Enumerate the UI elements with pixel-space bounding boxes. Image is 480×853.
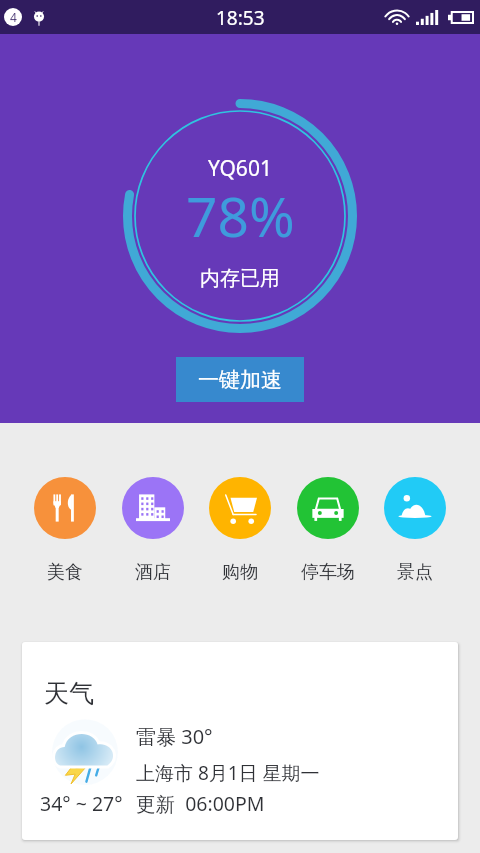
staticText: 78%: [186, 178, 295, 253]
button[interactable]: 景点: [384, 477, 446, 584]
staticText: 酒店: [135, 561, 171, 584]
button[interactable]: 天气: [22, 642, 458, 840]
staticText: 18:53: [216, 5, 265, 31]
staticText: 停车场: [301, 561, 355, 584]
staticText: 一键加速: [198, 367, 282, 393]
staticText: 34° ~ 27°: [40, 790, 123, 817]
button[interactable]: 美食: [34, 477, 96, 584]
staticText: 天气: [44, 678, 94, 709]
staticText: 4: [10, 9, 17, 25]
staticText: 购物: [222, 561, 258, 584]
staticText: 更新 06:00PM: [136, 790, 265, 817]
button[interactable]: 一键加速: [176, 357, 304, 402]
staticText: 景点: [397, 561, 433, 584]
staticText: 美食: [47, 561, 83, 584]
staticText: YQ601: [208, 154, 272, 183]
staticText: 内存已用: [200, 266, 280, 291]
button[interactable]: 购物: [209, 477, 271, 584]
button[interactable]: 酒店: [122, 477, 184, 584]
button[interactable]: 停车场: [297, 477, 359, 584]
staticText: 上海市 8月1日 星期一: [136, 760, 320, 786]
staticText: 雷暴 30°: [136, 723, 213, 750]
